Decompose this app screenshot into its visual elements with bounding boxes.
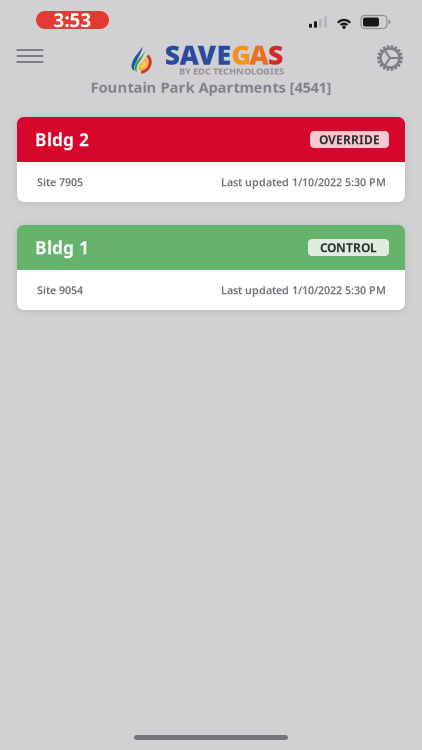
staticText: A	[249, 37, 268, 72]
staticText: Bldg 1	[35, 236, 89, 259]
staticText: Bldg 2	[35, 128, 89, 151]
button[interactable]: Bldg 2	[17, 117, 405, 202]
staticText: OVERRIDE	[319, 131, 380, 147]
button[interactable]: Settings	[368, 43, 412, 73]
staticText: CONTROL	[320, 239, 377, 255]
staticText: BY EDC TECHNOLOGIES	[179, 65, 284, 77]
staticText: SAVE	[164, 37, 231, 72]
staticText: G	[231, 37, 251, 72]
staticText: Last updated 1/10/2022 5:30 PM	[221, 283, 386, 297]
staticText: S	[268, 37, 283, 72]
staticText: Site 7905	[37, 175, 83, 189]
staticText: Last updated 1/10/2022 5:30 PM	[221, 175, 386, 189]
button[interactable]: Menu	[8, 41, 52, 71]
staticText: Fountain Park Apartments [4541]	[90, 77, 331, 97]
staticText: 3:53	[53, 8, 91, 32]
button[interactable]: Bldg 1	[17, 225, 405, 310]
staticText: Site 9054	[37, 283, 83, 297]
